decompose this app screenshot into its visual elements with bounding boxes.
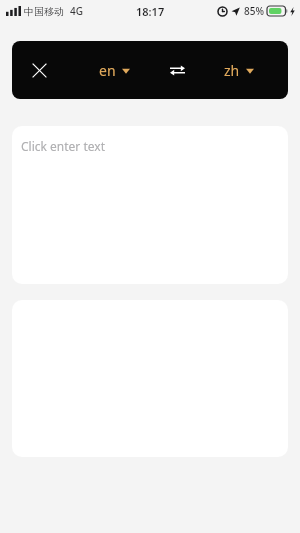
staticText: zh [224,61,240,80]
staticText: 18:17 [136,4,165,19]
button[interactable]: en [97,57,132,84]
button[interactable]: Swap languages [162,55,192,85]
staticText: Click enter text [21,138,105,154]
staticText: en [99,61,116,80]
button[interactable]: Close [22,53,56,87]
staticText: 4G [70,4,83,18]
staticText: 85% [244,4,264,18]
staticText: 中国移动 [24,5,64,18]
button[interactable]: Click enter text [12,126,288,284]
button[interactable]: zh [222,57,256,84]
